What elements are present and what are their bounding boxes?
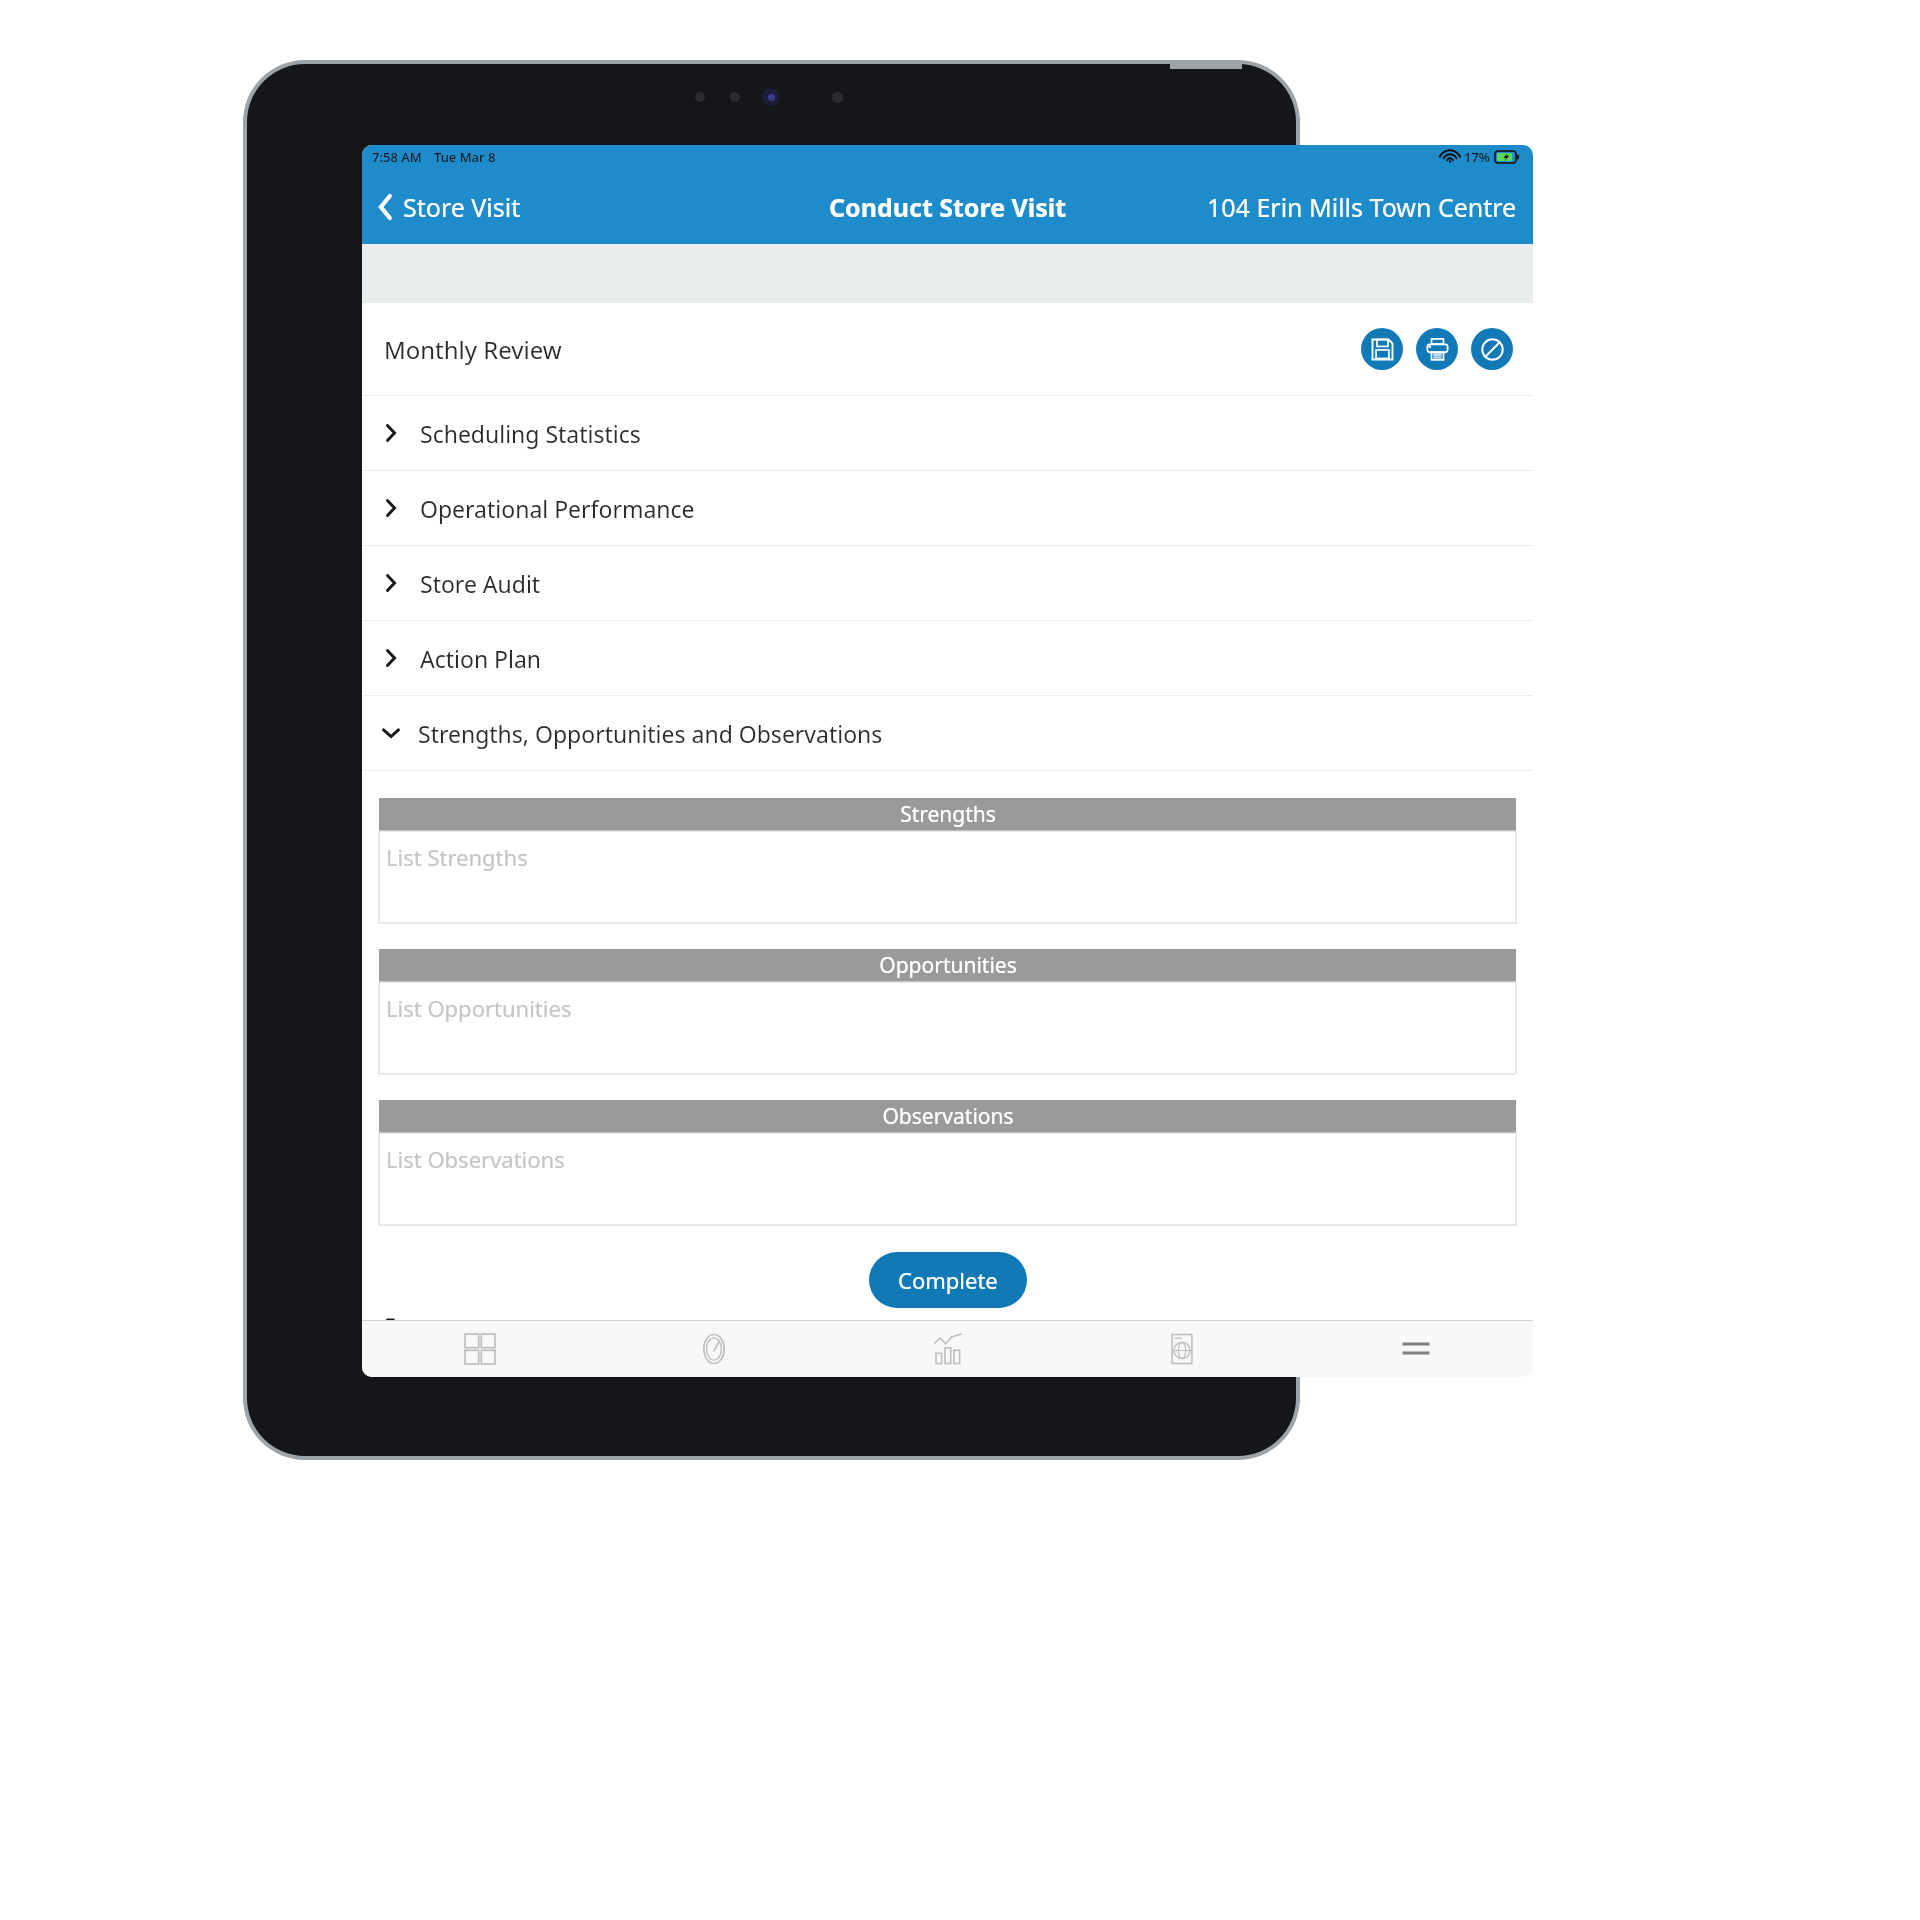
staticText: Opportunities [879,951,1017,980]
button[interactable]: 104 Erin Mills Town Centre [1207,190,1533,224]
button[interactable]: Dashboard [362,1321,597,1377]
staticText: Strengths, Opportunities and Observation… [418,718,883,749]
button[interactable]: Reports [831,1321,1065,1377]
staticText: List Opportunities [386,993,572,1023]
staticText: List Observations [386,1144,565,1174]
staticText: Tue Mar 8 [434,148,496,166]
staticText: Store Visit [403,190,521,224]
button[interactable]: Menu [1299,1321,1533,1377]
staticText: Action Plan [420,643,542,674]
staticText: 7:58 AM [372,148,422,166]
button[interactable]: Operational Performance [362,471,1533,545]
button[interactable]: Performance [597,1321,831,1377]
button[interactable]: Save [1361,328,1403,370]
staticText: Monthly Review [384,333,562,366]
staticText: Strengths [900,800,996,829]
button[interactable]: List Observations [379,1133,1516,1225]
button[interactable]: Complete [869,1252,1027,1308]
button[interactable]: Cancel [1471,328,1513,370]
staticText: Scheduling Statistics [420,418,641,449]
button[interactable]: Print [1416,328,1458,370]
button[interactable]: Store Visit [370,184,529,230]
staticText: Store Audit [420,568,541,599]
staticText: Observations [882,1102,1014,1131]
button[interactable]: Store Audit [362,546,1533,620]
button[interactable]: Scheduling Statistics [362,396,1533,470]
button[interactable]: List Strengths [379,831,1516,923]
staticText: Complete [898,1265,998,1295]
button[interactable]: Action Plan [362,621,1533,695]
button[interactable]: News [1065,1321,1299,1377]
button[interactable]: Strengths, Opportunities and Observation… [362,696,1533,770]
staticText: Operational Performance [420,493,695,524]
button[interactable]: List Opportunities [379,982,1516,1074]
staticText: 17% [1464,148,1490,166]
staticText: List Strengths [386,842,528,872]
staticText: Conduct Store Visit [829,190,1067,224]
